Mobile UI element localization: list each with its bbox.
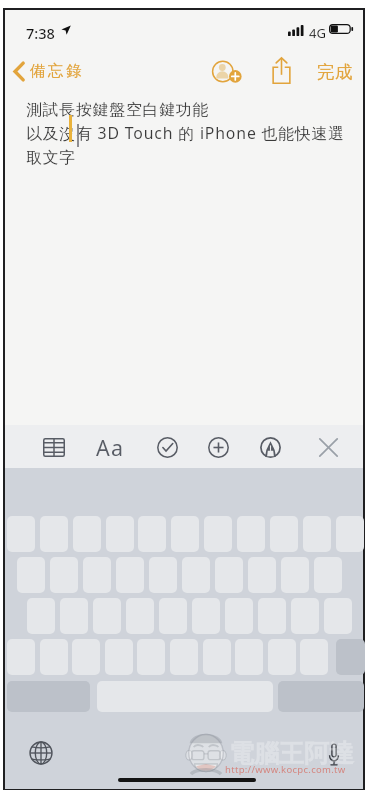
staticText: 備忘錄: [30, 61, 85, 81]
staticText: 4G: [309, 24, 326, 42]
button[interactable]: Backspace: [336, 639, 365, 675]
button[interactable]: 完成: [311, 57, 360, 87]
button[interactable]: 備忘錄: [5, 54, 91, 88]
staticText: 測試長按鍵盤空白鍵功能 以及沒有 3D Touch 的 iPhone 也能快速選…: [26, 100, 345, 167]
button[interactable]: Table: [39, 432, 69, 462]
button[interactable]: Key: [336, 516, 364, 552]
button[interactable]: Close: [313, 432, 343, 462]
button[interactable]: Add people: [207, 56, 238, 87]
button[interactable]: Markup: [255, 432, 285, 462]
button[interactable]: Checklist: [152, 432, 182, 462]
staticText: Aa: [96, 433, 125, 462]
staticText: 7:38: [26, 23, 55, 43]
staticText: 完成: [317, 61, 354, 83]
button[interactable]: Share: [265, 54, 297, 86]
staticText: http://www.kocpc.com.tw: [225, 763, 346, 776]
button[interactable]: Dictation: [320, 740, 348, 768]
button[interactable]: Return: [278, 681, 364, 712]
button[interactable]: Switch keyboard: [26, 738, 56, 768]
button[interactable]: Format: [93, 432, 127, 462]
staticText: 電腦王阿達: [229, 738, 354, 769]
button[interactable]: Add: [203, 432, 233, 462]
